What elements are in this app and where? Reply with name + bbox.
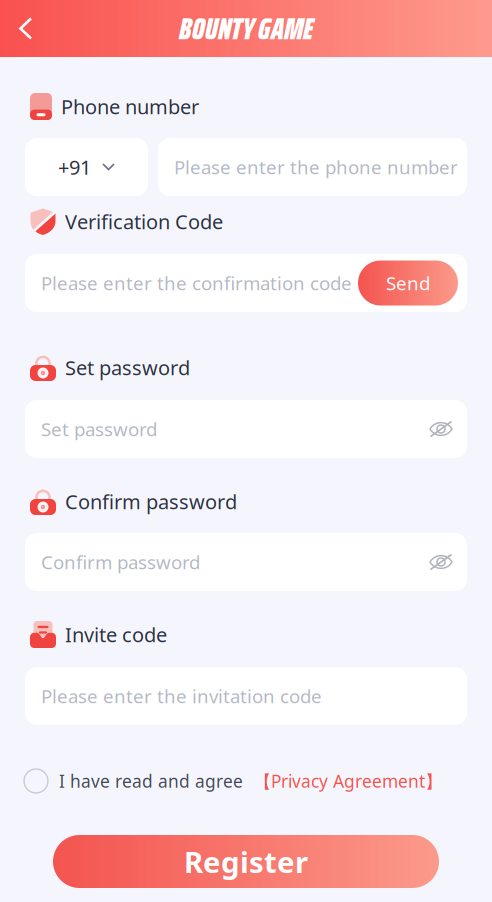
button[interactable]: Show password: [429, 419, 453, 439]
staticText: Please enter the confirmation code: [41, 271, 352, 295]
button[interactable]: Register: [0, 835, 492, 888]
staticText: Confirm password: [41, 550, 200, 574]
staticText: Set password: [41, 417, 157, 441]
staticText: 【Privacy Agreement】: [254, 769, 442, 792]
staticText: I have read and agree: [59, 769, 243, 792]
button[interactable]: I have read and agree: [0, 769, 492, 793]
staticText: +91: [58, 154, 91, 180]
staticText: Confirm password: [65, 488, 237, 515]
staticText: Register: [184, 842, 308, 881]
staticText: Please enter the phone number: [174, 155, 458, 179]
button[interactable]: +91: [25, 138, 148, 196]
staticText: Send: [386, 271, 430, 295]
staticText: Verification Code: [65, 208, 223, 235]
button[interactable]: Show password: [429, 552, 453, 572]
button[interactable]: Send: [358, 260, 458, 305]
staticText: BOUNTY GAME: [179, 4, 313, 53]
staticText: Invite code: [65, 621, 167, 648]
staticText: Set password: [65, 354, 190, 381]
button[interactable]: Back: [0, 0, 42, 57]
staticText: Please enter the invitation code: [41, 684, 322, 708]
staticText: Phone number: [61, 93, 199, 120]
